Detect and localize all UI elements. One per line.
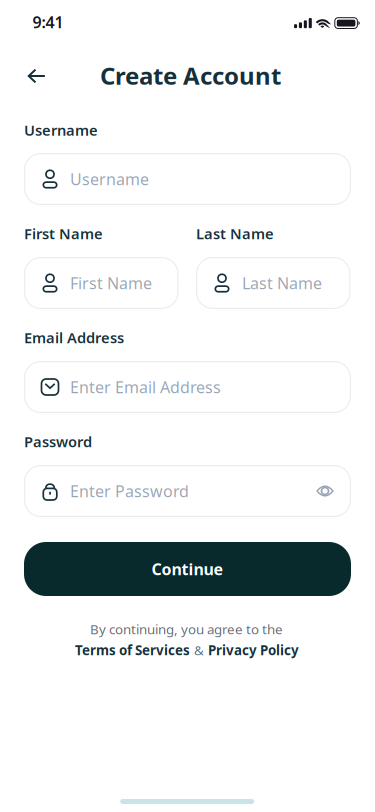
staticText: Last Name: [196, 224, 274, 243]
button[interactable]: Enter Password: [24, 465, 351, 517]
staticText: Username: [24, 120, 98, 140]
staticText: Last Name: [242, 272, 322, 294]
staticText: First Name: [70, 272, 152, 294]
staticText: Enter Email Address: [70, 376, 221, 398]
button[interactable]: Show password: [311, 477, 339, 505]
button[interactable]: Back: [19, 59, 55, 93]
button[interactable]: Enter Email Address: [24, 361, 351, 413]
button[interactable]: Username: [24, 153, 351, 205]
button[interactable]: Terms of Services: [75, 641, 190, 659]
staticText: Continue: [151, 558, 223, 580]
staticText: Enter Password: [70, 480, 189, 502]
staticText: Password: [24, 432, 92, 451]
staticText: &: [194, 641, 204, 659]
staticText: 9:41: [32, 11, 63, 33]
staticText: Privacy Policy: [208, 641, 299, 659]
button[interactable]: First Name: [24, 257, 178, 309]
staticText: By continuing, you agree to the: [90, 620, 283, 638]
button[interactable]: Last Name: [196, 257, 350, 309]
button[interactable]: Continue: [24, 542, 351, 596]
staticText: Terms of Services: [75, 641, 190, 659]
staticText: Create Account: [100, 60, 281, 91]
staticText: Email Address: [24, 328, 124, 347]
button[interactable]: Privacy Policy: [208, 641, 299, 659]
staticText: First Name: [24, 224, 103, 243]
staticText: Username: [70, 168, 149, 190]
